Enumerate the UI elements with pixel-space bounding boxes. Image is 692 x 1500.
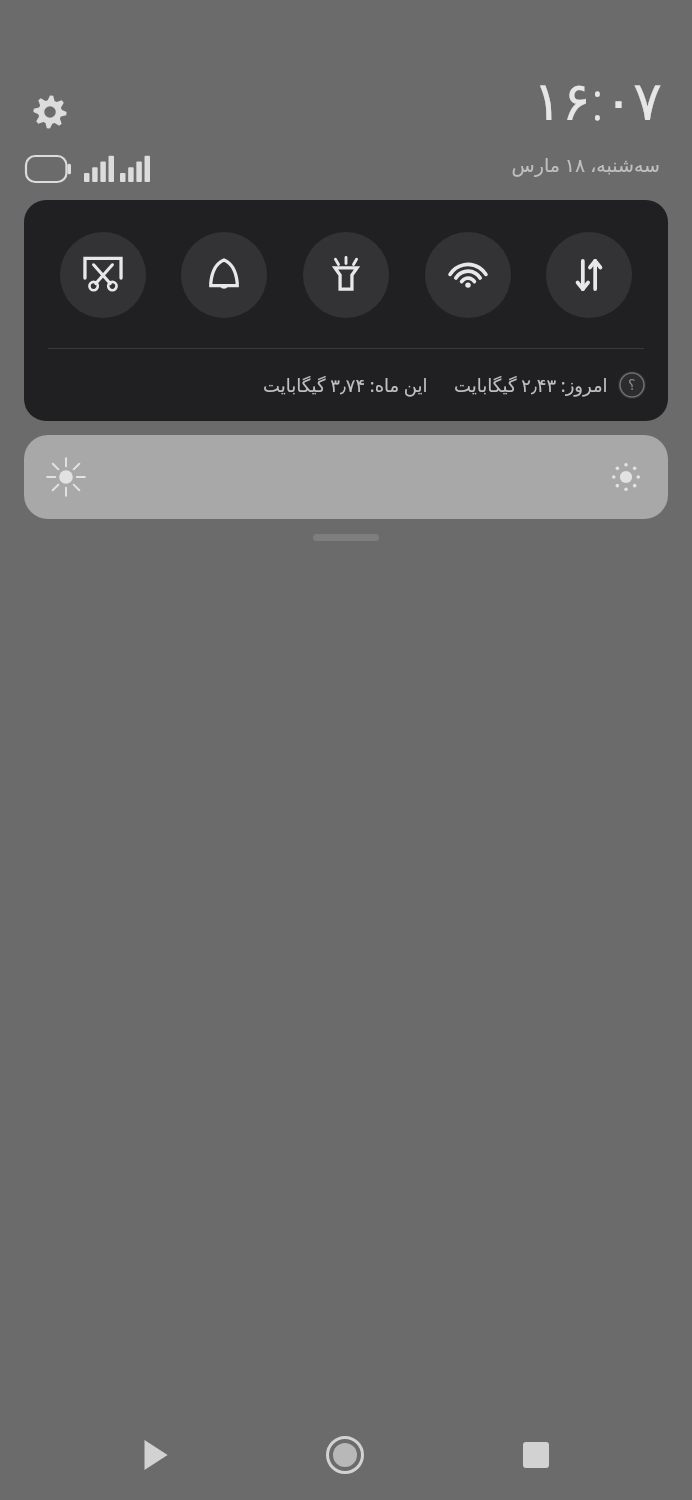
staticText: این ماه: ۳٫۷۴ گیگابایت	[263, 373, 428, 398]
button[interactable]: Home	[310, 1420, 380, 1490]
button[interactable]: Screenshot	[60, 232, 146, 318]
button[interactable]: Mobile data	[546, 232, 632, 318]
button[interactable]: این ماه: ۳٫۷۴ گیگابایت	[24, 349, 668, 421]
button[interactable]: Flashlight	[303, 232, 389, 318]
button[interactable]: Wi-Fi	[425, 232, 511, 318]
button[interactable]: Recent apps	[504, 1423, 568, 1487]
button[interactable]: Back	[123, 1423, 187, 1487]
button[interactable]: Do not disturb	[181, 232, 267, 318]
button[interactable]: Help	[618, 371, 646, 399]
staticText: ؟	[628, 377, 636, 393]
staticText: سه‌شنبه، ۱۸ مارس	[511, 152, 660, 178]
button[interactable]: Brightness	[24, 435, 668, 519]
staticText: امروز: ۲٫۴۳ گیگابایت	[454, 373, 608, 398]
staticText: ۱۶:۰۷	[532, 62, 662, 136]
button[interactable]: Settings	[28, 90, 72, 134]
